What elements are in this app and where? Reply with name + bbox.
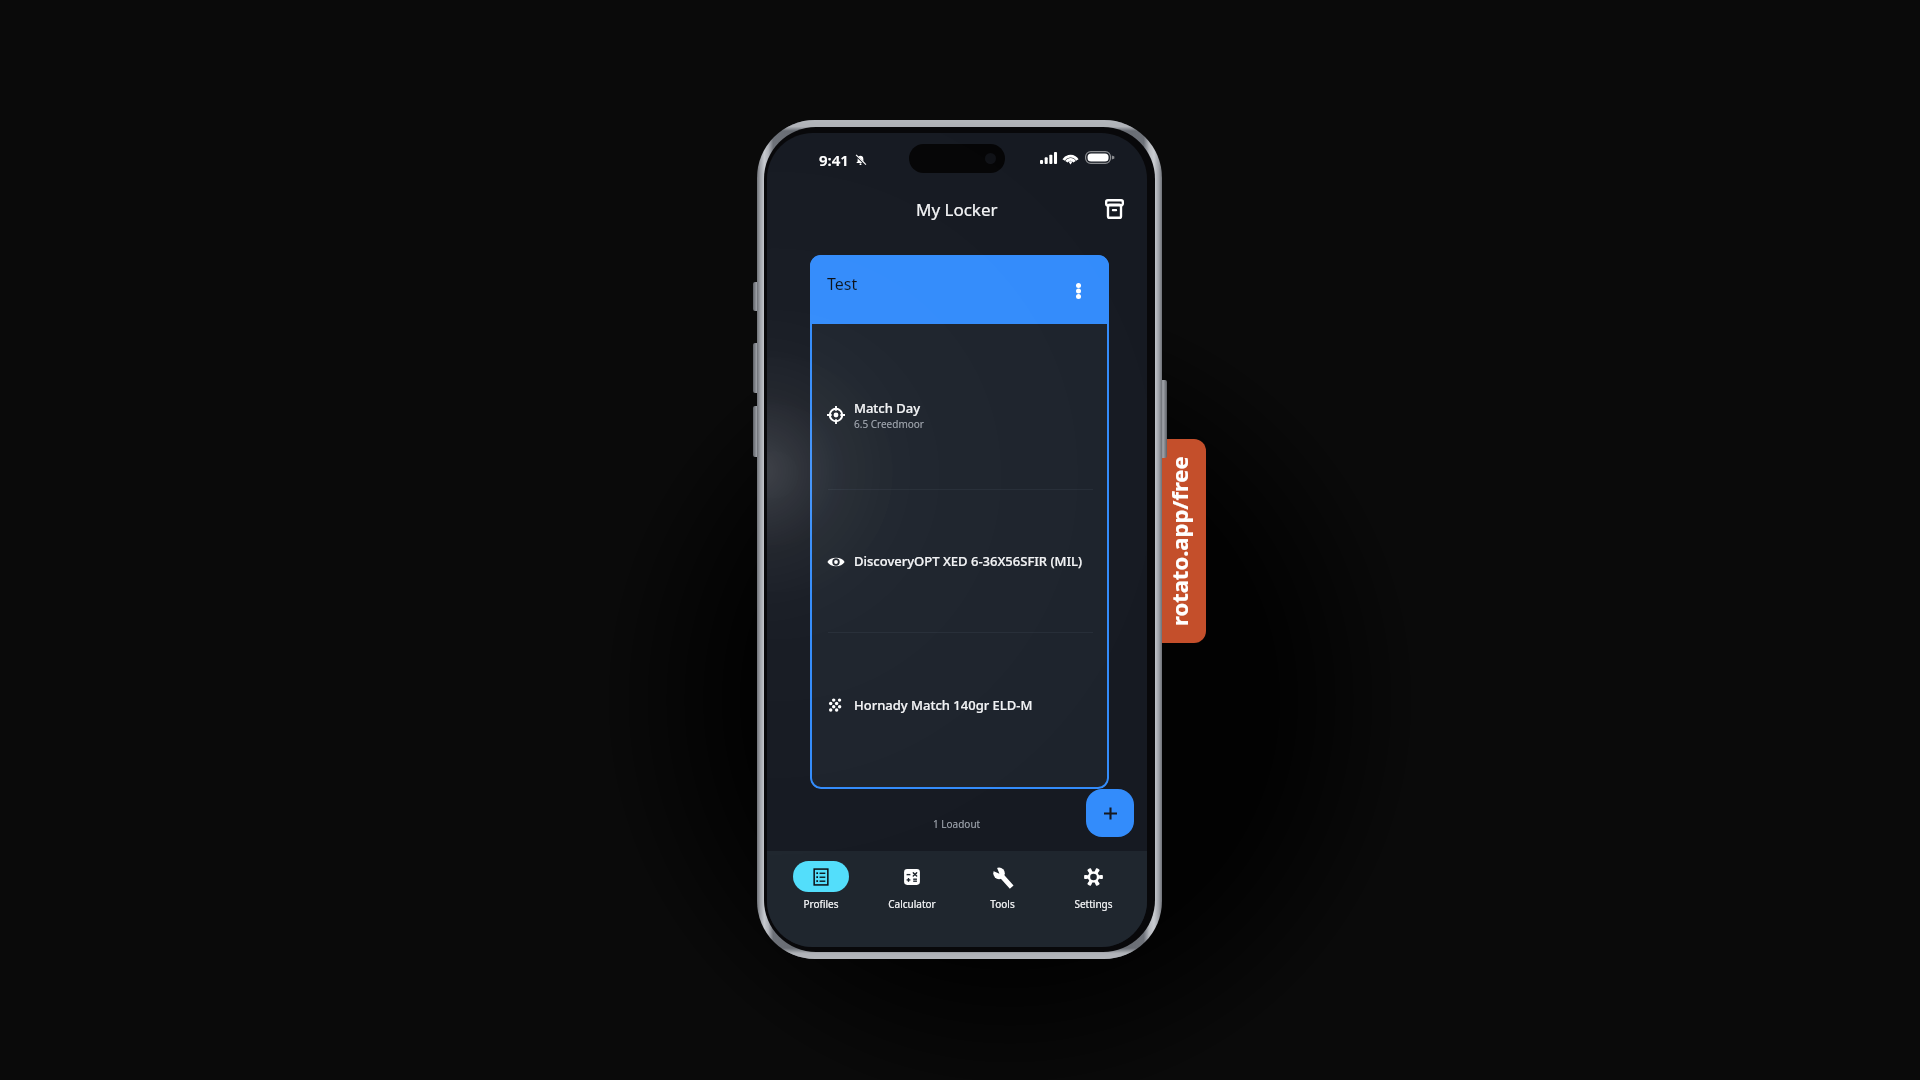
button[interactable]: rotato.app/free [1146, 439, 1206, 643]
staticText: DiscoveryOPT XED 6-36X56SFIR (MIL) [854, 552, 1083, 570]
button[interactable]: Profiles [785, 861, 857, 911]
button[interactable]: Test [810, 255, 1109, 789]
staticText: rotato.app/free [1164, 456, 1194, 626]
staticText: Tools [990, 897, 1015, 911]
staticText: Profiles [803, 897, 839, 911]
staticText: My Locker [916, 198, 998, 221]
staticText: Match Day [854, 399, 921, 417]
button[interactable]: Archive [1096, 191, 1132, 227]
staticText: Settings [1074, 897, 1113, 911]
button[interactable]: Calculator [876, 861, 948, 911]
button[interactable]: Hornady Match 140gr ELD-M [810, 633, 1109, 789]
button[interactable]: Add loadout [1086, 789, 1134, 837]
button[interactable]: Settings [1057, 861, 1129, 911]
staticText: Hornady Match 140gr ELD-M [854, 696, 1033, 714]
button[interactable]: DiscoveryOPT XED 6-36X56SFIR (MIL) [810, 490, 1109, 632]
staticText: Test [827, 273, 858, 295]
staticText: Calculator [888, 897, 936, 911]
staticText: 9:41 [819, 150, 849, 170]
button[interactable]: Match Day [810, 324, 1109, 489]
staticText: 6.5 Creedmoor [854, 417, 924, 431]
staticText: 1 Loadout [933, 817, 981, 831]
button[interactable]: Tools [966, 861, 1038, 911]
button[interactable]: More options [1063, 276, 1093, 306]
